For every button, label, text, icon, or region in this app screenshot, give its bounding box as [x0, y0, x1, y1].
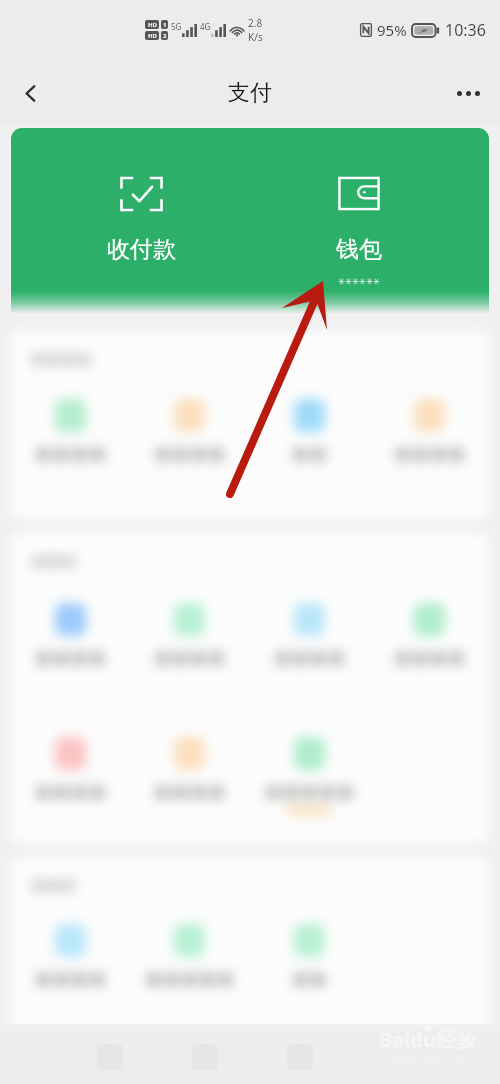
button[interactable]: Recents: [90, 1037, 130, 1077]
staticText: 2.8: [248, 16, 263, 30]
staticText: 10:36: [445, 19, 486, 41]
button[interactable]: Back: [280, 1037, 320, 1077]
button[interactable]: [130, 399, 249, 461]
button[interactable]: [11, 603, 130, 665]
staticText: 支付: [228, 79, 272, 107]
staticText: 收付款: [107, 235, 176, 264]
button[interactable]: 钱包: [239, 128, 478, 285]
button[interactable]: [249, 399, 369, 461]
button[interactable]: [130, 603, 249, 665]
button[interactable]: 收付款: [22, 128, 261, 264]
staticText: HD: [148, 21, 157, 29]
button[interactable]: [130, 924, 249, 986]
button[interactable]: [11, 399, 130, 461]
button[interactable]: [11, 924, 130, 986]
staticText: 2: [163, 32, 167, 40]
button[interactable]: [249, 737, 369, 815]
button[interactable]: [249, 924, 369, 986]
button[interactable]: Back: [6, 69, 54, 117]
staticText: 4G: [200, 21, 211, 32]
staticText: Baidu经验: [379, 1026, 476, 1053]
button[interactable]: [369, 603, 489, 665]
staticText: 钱包: [336, 235, 382, 264]
button[interactable]: [249, 603, 369, 665]
button[interactable]: [11, 737, 130, 799]
staticText: 95%: [377, 20, 407, 40]
button[interactable]: [130, 737, 249, 799]
button[interactable]: More options: [444, 69, 492, 117]
staticText: K/s: [248, 30, 263, 44]
staticText: HD: [148, 32, 157, 40]
button[interactable]: Home: [185, 1037, 225, 1077]
staticText: 5G: [171, 21, 182, 32]
staticText: 1: [163, 21, 167, 29]
button[interactable]: [369, 399, 489, 461]
